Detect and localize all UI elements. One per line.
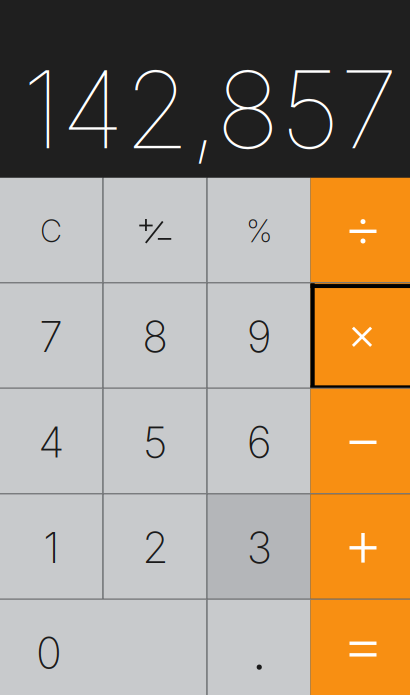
staticText: 6 — [247, 416, 272, 468]
button[interactable]: 7 — [0, 283, 102, 388]
staticText: 142,857 — [22, 45, 398, 174]
button[interactable]: 0 — [0, 600, 206, 695]
button[interactable]: 6 — [208, 389, 310, 493]
staticText: 8 — [142, 311, 168, 362]
button[interactable]: Decimal point — [208, 600, 310, 695]
button[interactable]: 2 — [104, 494, 206, 599]
staticText: 4 — [38, 416, 64, 468]
staticText: 5 — [143, 416, 168, 468]
button[interactable]: % — [208, 178, 310, 282]
staticText: C — [40, 212, 62, 249]
button[interactable]: Divide — [310, 178, 410, 282]
button[interactable]: 5 — [104, 389, 206, 493]
button[interactable]: 4 — [0, 389, 102, 493]
staticText: % — [246, 212, 272, 249]
button[interactable]: 8 — [104, 283, 206, 388]
staticText: 7 — [39, 311, 63, 362]
staticText: 1 — [43, 522, 59, 573]
button[interactable]: 3 — [208, 494, 310, 599]
button[interactable]: Toggle sign — [104, 178, 206, 282]
staticText: 3 — [247, 522, 272, 573]
button[interactable]: 1 — [0, 494, 102, 599]
button[interactable]: Multiply — [310, 283, 410, 388]
staticText: 2 — [142, 522, 168, 573]
button[interactable]: Equals — [310, 600, 410, 695]
button[interactable]: 9 — [208, 283, 310, 388]
button[interactable]: C — [0, 178, 102, 282]
staticText: 0 — [36, 627, 62, 678]
staticText: 9 — [247, 311, 272, 362]
button[interactable]: Plus — [310, 494, 410, 599]
button[interactable]: Minus — [310, 389, 410, 493]
